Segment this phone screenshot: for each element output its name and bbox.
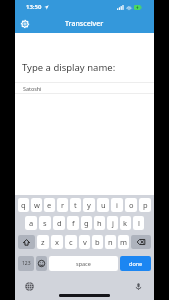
staticText: h <box>97 218 102 228</box>
button[interactable]: u <box>97 198 109 212</box>
staticText: o <box>129 200 134 210</box>
staticText: i <box>116 200 118 210</box>
button[interactable]: f <box>67 216 79 230</box>
button[interactable]: done <box>120 256 151 271</box>
staticText: g <box>84 218 89 228</box>
button[interactable]: v <box>79 235 90 249</box>
staticText: space <box>76 260 91 267</box>
button[interactable]: l <box>133 216 144 230</box>
button[interactable]: k <box>120 216 131 230</box>
button[interactable]: Shift <box>18 235 35 249</box>
button[interactable]: 123 <box>18 256 34 271</box>
staticText: s <box>43 218 47 228</box>
button[interactable]: g <box>81 216 92 230</box>
staticText: u <box>101 200 106 210</box>
button[interactable]: o <box>125 198 137 212</box>
staticText: done <box>129 260 143 267</box>
button[interactable]: space <box>49 256 118 271</box>
staticText: t <box>74 200 77 210</box>
staticText: n <box>108 237 113 247</box>
staticText: Type a display name: <box>22 61 116 74</box>
button[interactable]: s <box>39 216 51 230</box>
staticText: a <box>29 218 34 228</box>
button[interactable]: b <box>92 235 103 249</box>
staticText: f <box>72 218 75 228</box>
staticText: d <box>57 218 62 228</box>
button[interactable]: x <box>51 235 63 249</box>
button[interactable]: Dictate <box>134 282 143 291</box>
button[interactable]: h <box>94 216 105 230</box>
button[interactable]: i <box>111 198 123 212</box>
button[interactable]: Emoji <box>36 256 47 271</box>
button[interactable]: m <box>118 235 129 249</box>
button[interactable]: Backspace <box>131 235 151 249</box>
staticText: l <box>138 218 140 228</box>
staticText: q <box>21 200 26 210</box>
staticText: x <box>55 237 59 247</box>
staticText: m <box>120 237 128 247</box>
staticText: k <box>123 218 128 228</box>
staticText: 13:50 <box>26 3 42 11</box>
staticText: w <box>34 200 40 210</box>
staticText: c <box>69 237 73 247</box>
staticText: y <box>87 200 91 210</box>
staticText: b <box>95 237 100 247</box>
button[interactable]: c <box>65 235 77 249</box>
staticText: Satoshi <box>23 85 42 92</box>
button[interactable]: j <box>107 216 118 230</box>
button[interactable]: y <box>83 198 95 212</box>
button[interactable]: a <box>25 216 37 230</box>
staticText: e <box>47 200 52 210</box>
button[interactable]: t <box>70 198 81 212</box>
button[interactable]: z <box>37 235 49 249</box>
button[interactable]: q <box>18 198 29 212</box>
staticText: r <box>61 200 65 210</box>
button[interactable]: r <box>57 198 68 212</box>
button[interactable]: n <box>105 235 116 249</box>
staticText: v <box>83 237 87 247</box>
staticText: Transceiver <box>65 19 104 29</box>
button[interactable]: e <box>44 198 55 212</box>
staticText: j <box>112 218 114 228</box>
button[interactable]: Settings <box>17 16 33 32</box>
button[interactable]: d <box>53 216 65 230</box>
button[interactable]: w <box>31 198 42 212</box>
button[interactable]: Change keyboard <box>25 282 34 291</box>
button[interactable]: Satoshi <box>15 83 154 93</box>
button[interactable]: p <box>139 198 151 212</box>
staticText: 123 <box>22 260 31 267</box>
staticText: p <box>143 200 148 210</box>
staticText: z <box>41 237 45 247</box>
